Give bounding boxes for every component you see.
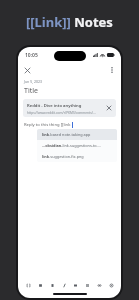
staticText: Jun 5, 2023 xyxy=(24,79,43,84)
button[interactable]: Remove link preview xyxy=(105,104,113,112)
staticText: [[Link]] Notes xyxy=(26,13,113,31)
button[interactable]: Checklist xyxy=(35,280,45,290)
button[interactable]: Bold xyxy=(47,280,57,290)
button[interactable]: link-based note-taking app xyxy=(37,129,117,140)
staticText: …obsidian-link-suggestions-to-… xyxy=(42,143,101,148)
button[interactable]: Settings xyxy=(106,280,116,290)
staticText: link-based note-taking app xyxy=(42,132,91,137)
staticText: Reply to this thing [[link xyxy=(24,122,71,128)
staticText: Reddit - Dive into anything xyxy=(27,103,82,109)
button[interactable]: Highlight xyxy=(70,280,80,290)
button[interactable]: Link xyxy=(94,280,104,290)
button[interactable]: Brackets xyxy=(23,280,33,290)
button[interactable]: link-suggestion-fix.png xyxy=(37,151,117,162)
button[interactable]: More options xyxy=(107,65,117,75)
staticText: link-suggestion-fix.png xyxy=(42,154,84,159)
button[interactable]: …obsidian-link-suggestions-to-… xyxy=(37,140,117,151)
button[interactable]: Italic xyxy=(59,280,69,290)
staticText: 10:05 xyxy=(25,52,38,59)
staticText: https://www.reddit.com/r/PKMS/comments/.… xyxy=(27,111,96,115)
staticText: Title xyxy=(24,86,38,96)
button[interactable]: List xyxy=(82,280,92,290)
button[interactable]: Close xyxy=(22,65,32,75)
button[interactable]: Reddit - Dive into anything xyxy=(23,99,116,117)
